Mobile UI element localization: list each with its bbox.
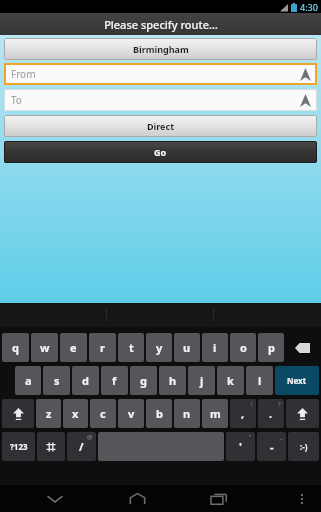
button[interactable]: j [188,366,215,395]
button[interactable]: g [130,366,157,395]
button[interactable]: Switch input method [37,432,65,461]
staticText: Direct [147,120,175,132]
staticText: i [213,340,217,355]
button[interactable]: To [4,89,317,111]
staticText: r [100,340,105,355]
button[interactable]: Shift [286,399,319,428]
button[interactable]: n [174,399,200,428]
staticText: ! [251,400,253,408]
staticText: :-) [300,441,308,452]
button[interactable]: i [202,333,228,362]
staticText: ' [239,439,242,454]
button[interactable]: r [89,333,116,362]
staticText: k [227,373,234,388]
button[interactable]: Birmingham [4,38,317,60]
button[interactable]: t [118,333,144,362]
button[interactable]: From [4,63,317,85]
button[interactable]: Use current location for To [297,92,313,108]
staticText: . [269,406,273,421]
button[interactable]: h [159,366,186,395]
staticText: m [210,406,221,421]
staticText: g [140,373,147,388]
button[interactable]: , [230,399,256,428]
button[interactable]: x [63,399,88,428]
button[interactable]: Direct [4,115,317,137]
button[interactable]: Delete [286,333,319,362]
button[interactable]: a [15,366,41,395]
button[interactable]: More options [287,485,317,512]
button[interactable]: v [118,399,144,428]
staticText: Birmingham [133,43,189,55]
staticText: From [11,67,36,81]
staticText: q [12,340,19,355]
button[interactable]: o [230,333,256,362]
button[interactable]: q [2,333,29,362]
staticText: e [70,340,77,355]
button[interactable]: Shift [2,399,34,428]
button[interactable]: m [202,399,228,428]
button[interactable]: e [60,333,87,362]
button[interactable]: Hide keyboard [32,485,78,512]
staticText: h [169,373,177,388]
button[interactable]: Go [4,141,317,163]
staticText: @ [87,433,93,441]
button[interactable]: p [258,333,284,362]
staticText: / [79,439,84,454]
button[interactable]: l [246,366,273,395]
button[interactable]: . [258,399,284,428]
staticText: _ [280,433,283,441]
staticText: c [100,406,106,421]
button[interactable]: s [43,366,70,395]
staticText: x [72,406,79,421]
staticText: y [156,340,163,355]
staticText: s [54,373,60,388]
staticText: , [241,406,245,421]
button[interactable]: Next [275,366,319,395]
staticText: o [240,340,247,355]
staticText: w [40,340,50,355]
button[interactable]: ?123 [2,432,35,461]
staticText: a [25,373,32,388]
staticText: ?123 [10,441,28,452]
button[interactable]: z [36,399,61,428]
staticText: - [270,439,274,454]
button[interactable]: Use current location for From [297,66,313,82]
button[interactable]: Recent apps [196,485,242,512]
staticText: j [200,373,204,388]
staticText: " [249,433,252,441]
button[interactable]: :-) [288,432,319,461]
staticText: t [129,340,134,355]
staticText: d [82,373,89,388]
staticText: p [268,340,275,355]
staticText: Please specify route… [104,17,218,32]
staticText: l [258,373,262,388]
staticText: Go [154,146,167,158]
button[interactable]: - [257,432,286,461]
staticText: ? [278,400,281,408]
button[interactable]: d [72,366,99,395]
button[interactable]: w [31,333,58,362]
button[interactable]: f [101,366,128,395]
staticText: n [183,406,191,421]
staticText: z [46,406,52,421]
staticText: f [112,373,117,388]
staticText: b [156,406,163,421]
button[interactable]: y [146,333,172,362]
button[interactable]: u [174,333,200,362]
button[interactable]: / [67,432,96,461]
staticText: Next [287,375,307,386]
button[interactable]: k [217,366,244,395]
staticText: To [11,93,22,107]
staticText: 4:30 [300,1,318,13]
button[interactable]: Home [114,485,160,512]
staticText: v [128,406,135,421]
button[interactable]: b [146,399,172,428]
button[interactable]: c [90,399,116,428]
button[interactable]: ' [226,432,255,461]
staticText: u [183,340,191,355]
